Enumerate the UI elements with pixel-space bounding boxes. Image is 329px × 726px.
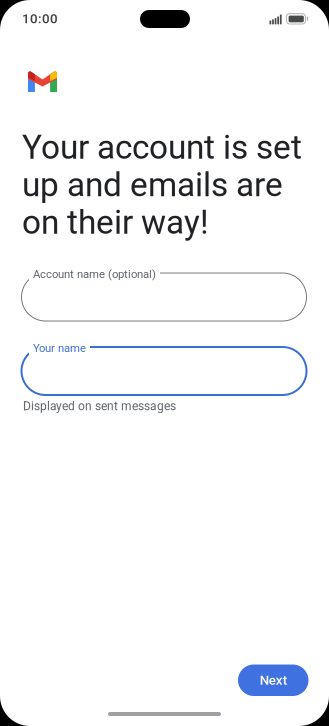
- button[interactable]: Next: [238, 664, 308, 696]
- staticText: 10:00: [22, 11, 58, 27]
- staticText: Next: [260, 672, 287, 688]
- staticText: up and emails are: [22, 165, 283, 204]
- staticText: on their way!: [22, 203, 209, 242]
- staticText: Your name: [33, 341, 86, 355]
- staticText: Account name (optional): [33, 267, 156, 281]
- staticText: Displayed on sent messages: [23, 399, 176, 413]
- staticText: Your account is set: [22, 128, 302, 167]
